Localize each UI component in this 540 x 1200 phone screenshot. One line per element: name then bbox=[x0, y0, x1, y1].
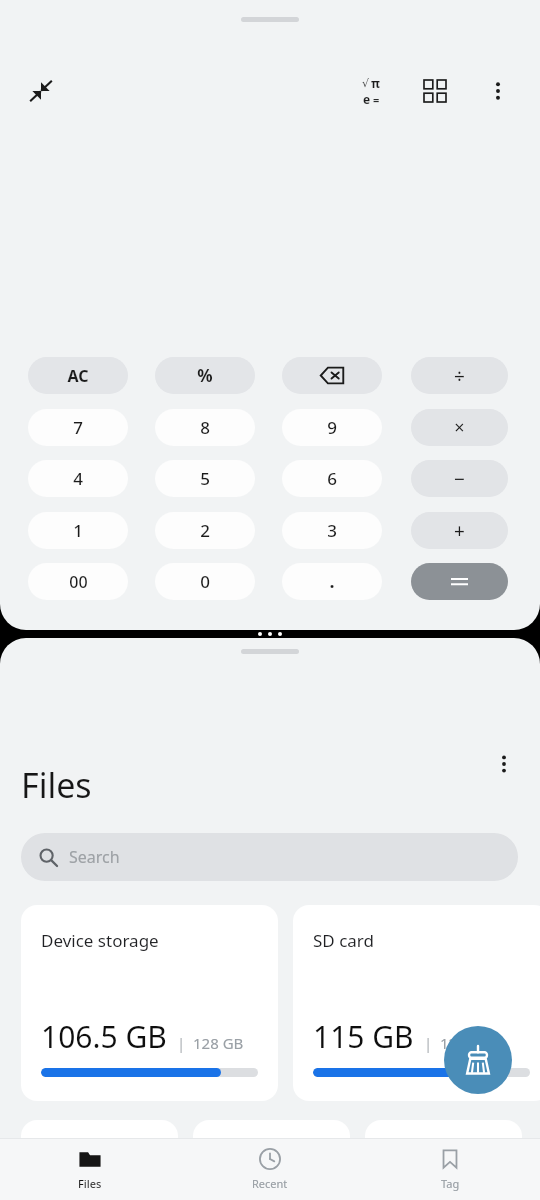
staticText: 106.5 GB bbox=[41, 1016, 167, 1057]
button[interactable] bbox=[21, 1120, 178, 1160]
staticText: 7 bbox=[73, 416, 83, 439]
button[interactable]: Scientific calculator bbox=[348, 68, 394, 114]
staticText: 128 GB bbox=[440, 1033, 491, 1053]
staticText: 9 bbox=[327, 416, 337, 439]
button[interactable]: % bbox=[155, 357, 255, 394]
button[interactable] bbox=[411, 563, 508, 600]
staticText: . bbox=[329, 569, 335, 594]
button[interactable]: 0 bbox=[155, 563, 255, 600]
staticText: 5 bbox=[200, 467, 210, 490]
staticText: 4 bbox=[73, 467, 83, 490]
button[interactable]: History bbox=[412, 68, 458, 114]
staticText: SD card bbox=[313, 929, 374, 952]
staticText: 8 bbox=[200, 416, 210, 439]
staticText: 2 bbox=[200, 519, 210, 542]
staticText: = bbox=[373, 92, 380, 107]
button[interactable]: Recent bbox=[180, 1138, 360, 1200]
button[interactable]: 4 bbox=[28, 460, 128, 497]
staticText: Files bbox=[78, 1176, 102, 1191]
button[interactable]: More options bbox=[475, 68, 521, 114]
button[interactable]: 9 bbox=[282, 409, 382, 446]
button[interactable]: . bbox=[282, 563, 382, 600]
button[interactable]: Collapse bbox=[18, 68, 64, 114]
staticText: 1 bbox=[73, 519, 83, 542]
staticText: √ bbox=[362, 77, 370, 90]
staticText: − bbox=[454, 466, 465, 492]
staticText: % bbox=[197, 364, 213, 387]
button[interactable] bbox=[365, 1120, 522, 1160]
button[interactable]: × bbox=[411, 409, 508, 446]
button[interactable] bbox=[193, 1120, 350, 1160]
staticText: AC bbox=[67, 365, 89, 387]
button[interactable]: 8 bbox=[155, 409, 255, 446]
button[interactable]: 5 bbox=[155, 460, 255, 497]
button[interactable]: − bbox=[411, 460, 508, 497]
button[interactable]: Search bbox=[21, 833, 518, 881]
button[interactable]: 00 bbox=[28, 563, 128, 600]
staticText: Files bbox=[21, 762, 92, 808]
button[interactable]: 7 bbox=[28, 409, 128, 446]
button[interactable]: Backspace bbox=[282, 357, 382, 394]
staticText: ÷ bbox=[454, 363, 465, 389]
staticText: 00 bbox=[69, 571, 88, 593]
button[interactable]: Files bbox=[0, 1138, 180, 1200]
button[interactable]: + bbox=[411, 512, 508, 549]
staticText: × bbox=[454, 415, 465, 440]
button[interactable]: AC bbox=[28, 357, 128, 394]
button[interactable]: Tag bbox=[360, 1138, 540, 1200]
button[interactable]: Clean up storage bbox=[444, 1026, 512, 1094]
button[interactable]: Split screen divider bbox=[0, 630, 540, 638]
staticText: e bbox=[363, 91, 371, 107]
staticText: 6 bbox=[327, 467, 337, 490]
staticText: Recent bbox=[252, 1176, 288, 1191]
staticText: | bbox=[424, 1033, 433, 1053]
button[interactable]: 1 bbox=[28, 512, 128, 549]
button[interactable]: SD card bbox=[293, 905, 540, 1101]
staticText: 115 GB bbox=[313, 1016, 414, 1057]
staticText: + bbox=[454, 518, 465, 544]
button[interactable]: ÷ bbox=[411, 357, 508, 394]
staticText: Search bbox=[69, 846, 120, 868]
button[interactable]: More options bbox=[481, 741, 527, 787]
staticText: 0 bbox=[200, 570, 210, 593]
staticText: π bbox=[371, 75, 380, 91]
button[interactable]: Device storage bbox=[21, 905, 278, 1101]
button[interactable]: 3 bbox=[282, 512, 382, 549]
button[interactable]: 2 bbox=[155, 512, 255, 549]
staticText: Device storage bbox=[41, 929, 159, 952]
staticText: 128 GB bbox=[193, 1033, 244, 1053]
staticText: 3 bbox=[327, 519, 337, 542]
staticText: | bbox=[177, 1033, 186, 1053]
staticText: Tag bbox=[441, 1176, 460, 1191]
button[interactable]: 6 bbox=[282, 460, 382, 497]
